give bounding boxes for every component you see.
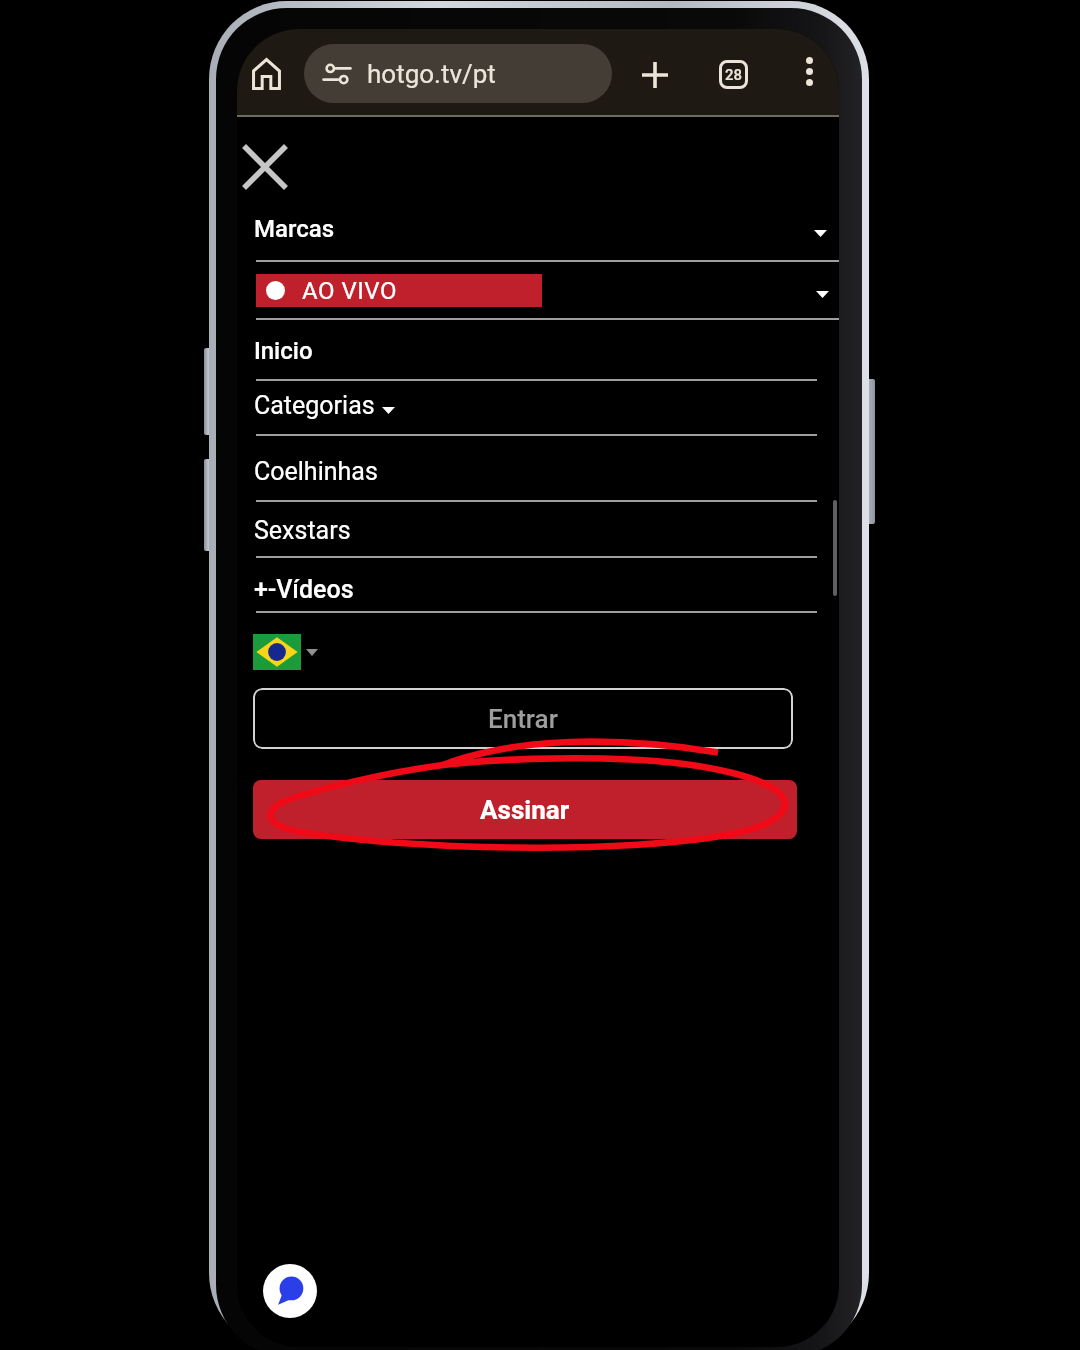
button[interactable]: Change language — [253, 634, 337, 670]
button[interactable]: New tab — [630, 50, 679, 99]
button[interactable]: Home — [242, 50, 290, 98]
staticText: Sexstars — [254, 516, 351, 545]
button[interactable]: Entrar — [253, 688, 793, 749]
button[interactable]: Marcas — [254, 213, 819, 244]
button[interactable]: Chat — [263, 1264, 317, 1318]
staticText: 28 — [725, 66, 743, 84]
button[interactable]: Assinar — [253, 780, 797, 839]
staticText: hotgo.tv/pt — [367, 59, 496, 89]
button[interactable]: hotgo.tv/pt — [304, 44, 612, 103]
staticText: AO VIVO — [302, 277, 397, 305]
staticText: Marcas — [254, 215, 335, 243]
staticText: +-Vídeos — [254, 575, 354, 604]
button[interactable]: Coelhinhas — [254, 455, 819, 488]
button[interactable]: More options — [787, 49, 831, 93]
staticText: Coelhinhas — [254, 457, 378, 486]
staticText: Entrar — [488, 704, 558, 734]
button[interactable]: Inicio — [254, 335, 819, 366]
staticText: Categorias — [254, 391, 375, 420]
staticText: Inicio — [254, 337, 313, 365]
button[interactable]: Close — [237, 135, 296, 198]
staticText: Assinar — [480, 795, 570, 825]
button[interactable]: AO VIVO — [256, 274, 542, 307]
button[interactable]: Expand brands — [800, 213, 839, 253]
button[interactable]: Sexstars — [254, 514, 819, 547]
button[interactable]: Categorias — [254, 389, 819, 422]
button[interactable]: +-Vídeos — [254, 573, 819, 606]
button[interactable]: Expand live — [802, 274, 839, 314]
button[interactable]: Tabs — [708, 49, 759, 100]
